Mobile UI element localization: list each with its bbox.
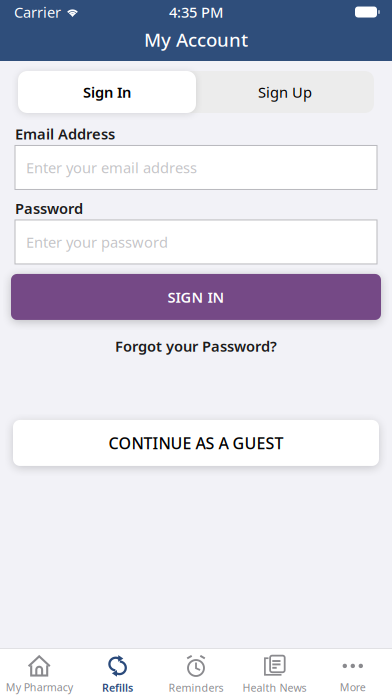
button[interactable]: CONTINUE AS A GUEST [13, 420, 379, 466]
staticText: My Pharmacy [6, 680, 73, 694]
staticText: Sign In [83, 82, 131, 102]
button[interactable]: Enter your password [15, 220, 377, 264]
button[interactable]: Reminders [157, 646, 235, 696]
button[interactable]: Sign In [18, 71, 196, 113]
staticText: More [340, 680, 366, 694]
staticText: Sign Up [258, 82, 312, 102]
button[interactable]: Forgot your Password? [115, 333, 277, 359]
staticText: Carrier [14, 2, 61, 22]
staticText: My Account [144, 27, 248, 52]
staticText: Password [15, 198, 83, 218]
staticText: Health News [242, 680, 306, 695]
button[interactable]: My Pharmacy [0, 647, 78, 696]
button[interactable]: Health News [235, 646, 314, 696]
staticText: SIGN IN [167, 287, 224, 307]
button[interactable]: Enter your email address [15, 145, 377, 189]
staticText: 4:35 PM [169, 2, 223, 22]
staticText: Enter your password [26, 232, 168, 252]
staticText: Enter your email address [26, 158, 197, 177]
staticText: CONTINUE AS A GUEST [108, 432, 283, 453]
staticText: Forgot your Password? [115, 336, 277, 356]
button[interactable]: SIGN IN [11, 274, 381, 320]
staticText: Reminders [168, 680, 223, 695]
staticText: Email Address [15, 124, 115, 143]
staticText: Refills [102, 680, 133, 695]
button[interactable]: Refills [78, 646, 157, 696]
button[interactable]: More [314, 647, 392, 696]
button[interactable]: Sign Up [196, 71, 374, 113]
